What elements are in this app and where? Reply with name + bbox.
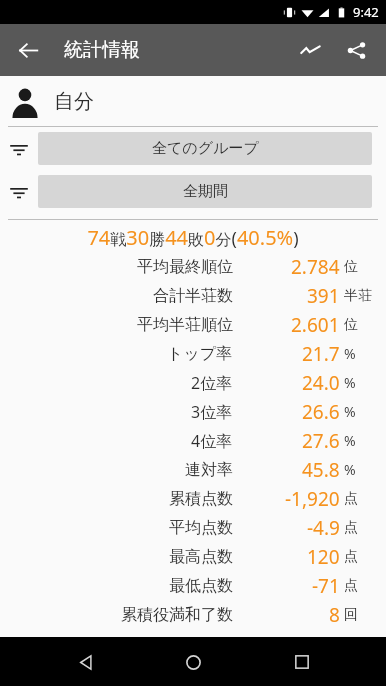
staticText: 4位率 <box>191 430 233 452</box>
staticText: % <box>344 402 356 421</box>
staticText: 3位率 <box>191 401 233 423</box>
staticText: 累積点数 <box>169 489 233 509</box>
button[interactable]: 最高点数 <box>0 542 386 571</box>
staticText: 24.0 <box>302 370 340 396</box>
staticText: 自分 <box>54 89 94 114</box>
staticText: 累積役満和了数 <box>121 605 233 625</box>
button[interactable]: 平均点数 <box>0 513 386 542</box>
button[interactable]: 平均半荘順位 <box>0 310 386 339</box>
staticText: 2.784 <box>291 254 340 280</box>
staticText: 27.6 <box>302 428 340 454</box>
staticText: 位 <box>344 316 358 334</box>
button[interactable]: Select period filter <box>0 170 386 213</box>
staticText: 点 <box>344 548 358 566</box>
button[interactable]: Select group filter <box>0 127 386 170</box>
button[interactable]: 合計半荘数 <box>0 281 386 310</box>
staticText: -4.9 <box>307 515 340 541</box>
staticText: 連対率 <box>185 460 233 480</box>
button[interactable]: 最低点数 <box>0 571 386 600</box>
button[interactable]: 3位率 <box>0 397 386 426</box>
staticText: 点 <box>344 519 358 537</box>
staticText: トップ率 <box>167 344 233 364</box>
staticText: -1,920 <box>285 486 340 512</box>
staticText: 点 <box>344 577 358 595</box>
button[interactable]: Share <box>336 30 376 70</box>
button[interactable]: トップ率 <box>0 339 386 368</box>
button[interactable]: 自分 <box>0 76 386 126</box>
staticText: 9:42 <box>353 3 379 21</box>
button[interactable]: Back <box>8 30 48 70</box>
staticText: 120 <box>307 544 340 570</box>
staticText: 全期間 <box>183 182 228 201</box>
button[interactable]: 累積役満和了数 <box>0 600 386 629</box>
staticText: 最低点数 <box>169 576 233 596</box>
staticText: % <box>344 344 356 363</box>
staticText: % <box>344 373 356 392</box>
staticText: 最高点数 <box>169 547 233 567</box>
button[interactable]: 連対率 <box>0 455 386 484</box>
staticText: 点 <box>344 490 358 508</box>
button[interactable]: Home <box>169 638 217 686</box>
staticText: -71 <box>312 573 340 599</box>
staticText: 回 <box>344 606 358 624</box>
button[interactable]: 2位率 <box>0 368 386 397</box>
staticText: 391 <box>307 283 340 309</box>
staticText: 平均最終順位 <box>137 257 233 277</box>
staticText: 74戦30勝44敗0分(40.5%) <box>87 224 299 251</box>
staticText: 2.601 <box>291 312 340 338</box>
staticText: 45.8 <box>302 457 340 483</box>
staticText: 位 <box>344 258 358 276</box>
button[interactable]: 累積点数 <box>0 484 386 513</box>
button[interactable]: 4位率 <box>0 426 386 455</box>
staticText: 26.6 <box>302 399 340 425</box>
staticText: % <box>344 431 356 450</box>
button[interactable]: 平均最終順位 <box>0 252 386 281</box>
staticText: 統計情報 <box>64 38 140 62</box>
staticText: 8 <box>329 602 340 628</box>
staticText: 全てのグループ <box>152 139 259 158</box>
button[interactable]: Back <box>61 638 109 686</box>
staticText: 平均半荘順位 <box>137 315 233 335</box>
staticText: 2位率 <box>191 372 233 394</box>
staticText: 合計半荘数 <box>153 286 233 306</box>
button[interactable]: Graph <box>290 30 330 70</box>
staticText: 21.7 <box>302 341 340 367</box>
staticText: 平均点数 <box>169 518 233 538</box>
button[interactable]: Recent apps <box>278 638 326 686</box>
staticText: % <box>344 460 356 479</box>
staticText: 半荘 <box>344 287 372 305</box>
